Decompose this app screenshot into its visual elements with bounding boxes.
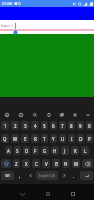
- button[interactable]: 4: [31, 121, 39, 130]
- button[interactable]: Comma: [15, 171, 25, 180]
- button[interactable]: C: [32, 159, 40, 168]
- button[interactable]: Move cursor left: [25, 171, 35, 180]
- staticText: English (US): [39, 174, 56, 178]
- staticText: S: [16, 148, 19, 154]
- staticText: H: [53, 148, 57, 154]
- button[interactable]: Home: [35, 184, 60, 200]
- button[interactable]: 1: [1, 121, 9, 130]
- staticText: D: [25, 148, 29, 154]
- staticText: R: [34, 136, 37, 142]
- button[interactable]: Search: [28, 109, 42, 120]
- button[interactable]: 9: [77, 121, 84, 130]
- staticText: 2: [14, 123, 17, 129]
- button[interactable]: GIF: [14, 109, 28, 120]
- button[interactable]: !#1: [1, 171, 14, 180]
- staticText: U: [61, 136, 65, 142]
- staticText: 4: [34, 123, 37, 129]
- button[interactable]: R: [31, 134, 39, 143]
- button[interactable]: H: [51, 146, 59, 155]
- button[interactable]: O: [77, 134, 84, 143]
- button[interactable]: Settings: [68, 109, 81, 120]
- staticText: 01:36: [2, 1, 11, 6]
- staticText: 9: [79, 123, 82, 129]
- button[interactable]: M: [72, 159, 80, 168]
- staticText: K: [74, 148, 77, 154]
- button[interactable]: X: [22, 159, 30, 168]
- staticText: Z: [15, 161, 18, 167]
- button[interactable]: D: [23, 146, 30, 155]
- button[interactable]: Y: [50, 134, 57, 143]
- button[interactable]: B: [52, 159, 60, 168]
- staticText: A: [7, 148, 10, 154]
- button[interactable]: Move cursor right: [59, 171, 69, 180]
- staticText: 1: [4, 123, 7, 129]
- button[interactable]: Stickers: [55, 109, 68, 120]
- staticText: N: [64, 161, 68, 167]
- button[interactable]: 6: [50, 121, 57, 130]
- button[interactable]: E: [21, 134, 29, 143]
- button[interactable]: Back: [9, 184, 35, 200]
- staticText: C: [35, 161, 38, 167]
- staticText: F: [34, 148, 37, 154]
- staticText: T: [43, 136, 46, 142]
- button[interactable]: Period: [69, 171, 79, 180]
- button[interactable]: A: [5, 146, 12, 155]
- staticText: L: [84, 148, 87, 154]
- button[interactable]: F: [32, 146, 39, 155]
- button[interactable]: Shift: [1, 159, 11, 168]
- button[interactable]: Backspace: [82, 159, 93, 168]
- button[interactable]: J: [61, 146, 69, 155]
- button[interactable]: L: [81, 146, 89, 155]
- staticText: X: [25, 161, 28, 167]
- button[interactable]: Enter: [80, 171, 93, 180]
- button[interactable]: Z: [13, 159, 20, 168]
- button[interactable]: 5: [41, 121, 48, 130]
- button[interactable]: P: [86, 134, 93, 143]
- staticText: E: [24, 136, 27, 142]
- staticText: 8: [70, 123, 73, 129]
- staticText: O: [79, 136, 83, 142]
- staticText: 7: [61, 123, 64, 129]
- button[interactable]: T: [41, 134, 48, 143]
- staticText: 6: [52, 123, 55, 129]
- staticText: Y: [52, 136, 55, 142]
- button[interactable]: V: [42, 159, 50, 168]
- staticText: .: [73, 173, 75, 179]
- button[interactable]: 7: [59, 121, 66, 130]
- staticText: I: [71, 136, 73, 142]
- staticText: 0: [88, 123, 91, 129]
- button[interactable]: 2: [11, 121, 19, 130]
- staticText: J: [64, 148, 66, 154]
- button[interactable]: Clipboard: [42, 109, 55, 120]
- staticText: Q: [3, 136, 7, 142]
- button[interactable]: I: [68, 134, 75, 143]
- button[interactable]: U: [59, 134, 66, 143]
- staticText: G: [43, 148, 47, 154]
- staticText: V: [45, 161, 48, 167]
- staticText: B: [55, 161, 58, 167]
- button[interactable]: 8: [68, 121, 75, 130]
- button[interactable]: K: [71, 146, 79, 155]
- staticText: P: [88, 136, 91, 142]
- button[interactable]: English (US): [36, 171, 58, 180]
- staticText: W: [13, 136, 18, 142]
- staticText: M: [74, 161, 78, 167]
- button[interactable]: Emoji: [0, 109, 14, 120]
- staticText: !#1: [5, 173, 11, 178]
- button[interactable]: Recent apps: [60, 184, 85, 200]
- staticText: 5: [43, 123, 46, 129]
- button[interactable]: G: [41, 146, 49, 155]
- button[interactable]: Q: [1, 134, 9, 143]
- button[interactable]: More options: [81, 109, 94, 120]
- staticText: 3: [24, 123, 27, 129]
- button[interactable]: 3: [21, 121, 29, 130]
- button[interactable]: W: [11, 134, 19, 143]
- staticText: ,: [19, 173, 21, 179]
- staticText: Input →: [1, 23, 14, 28]
- button[interactable]: S: [14, 146, 21, 155]
- other: Text selection handle: [13, 30, 18, 35]
- button[interactable]: 0: [86, 121, 93, 130]
- button[interactable]: N: [62, 159, 70, 168]
